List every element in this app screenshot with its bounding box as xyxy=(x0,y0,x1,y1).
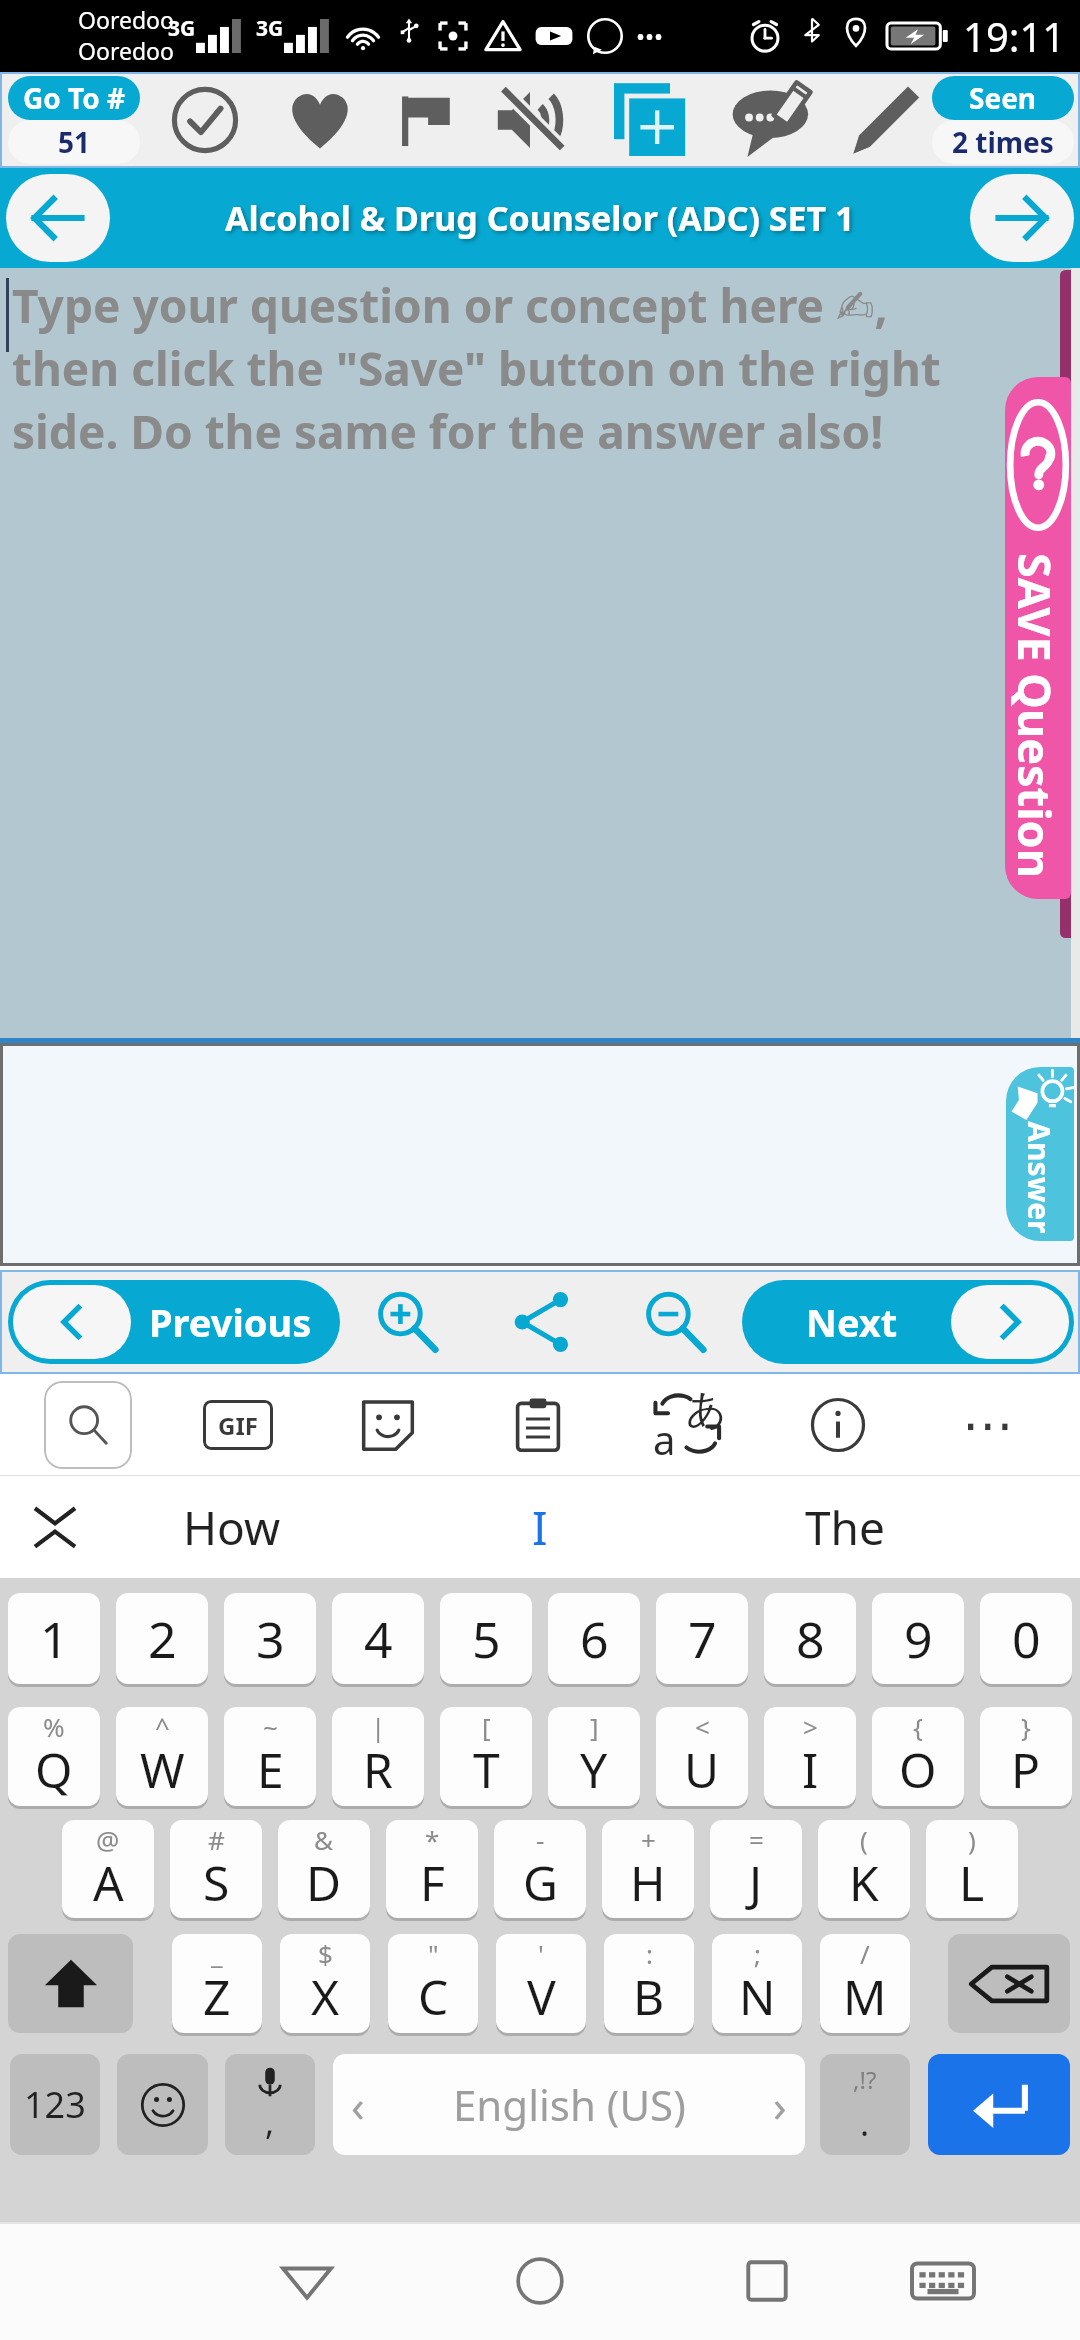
button[interactable]: @ xyxy=(62,1820,154,1918)
button[interactable]: Flag xyxy=(381,76,469,164)
button[interactable]: & xyxy=(278,1820,370,1918)
button[interactable]: Recents xyxy=(712,2226,822,2336)
button[interactable]: Home xyxy=(485,2226,595,2336)
button[interactable]: ‹ xyxy=(333,2054,805,2155)
button[interactable]: ~ xyxy=(224,1707,316,1806)
staticText: I xyxy=(532,1496,548,1559)
button[interactable]: = xyxy=(710,1820,802,1918)
button[interactable]: Expand suggestions xyxy=(26,1498,84,1556)
button[interactable]: Go To # xyxy=(8,76,140,164)
button[interactable]: Note xyxy=(728,76,816,164)
staticText: Ooredoo xyxy=(78,35,174,66)
button[interactable]: ( xyxy=(818,1820,910,1918)
staticText: 3 xyxy=(256,1605,285,1673)
button[interactable]: GIF xyxy=(194,1381,282,1469)
button[interactable]: The xyxy=(700,1476,990,1578)
button[interactable]: [ xyxy=(440,1707,532,1806)
button[interactable]: Back xyxy=(252,2226,362,2336)
staticText: Go To # xyxy=(23,79,126,117)
button[interactable]: 4 xyxy=(332,1593,424,1684)
button[interactable]: > xyxy=(764,1707,856,1806)
button[interactable]: Zoom out xyxy=(630,1277,720,1367)
button[interactable]: 7 xyxy=(656,1593,748,1684)
button[interactable]: 3 xyxy=(224,1593,316,1684)
staticText: X xyxy=(311,1964,340,2029)
button[interactable]: 8 xyxy=(764,1593,856,1684)
staticText: Z xyxy=(203,1964,231,2029)
button[interactable]: $ xyxy=(280,1934,370,2033)
staticText: U xyxy=(684,1737,720,1802)
button[interactable]: Hide keyboard xyxy=(888,2226,998,2336)
button[interactable]: 6 xyxy=(548,1593,640,1684)
button[interactable]: + xyxy=(602,1820,694,1918)
button[interactable]: Show answer xyxy=(1006,1067,1074,1241)
button[interactable]: _ xyxy=(172,1934,262,2033)
button[interactable]: Shift xyxy=(8,1934,133,2033)
button[interactable]: Mark known xyxy=(161,76,249,164)
button[interactable]: / xyxy=(820,1934,910,2033)
staticText: ; xyxy=(754,1936,761,1971)
button[interactable]: ] xyxy=(548,1707,640,1806)
button[interactable]: < xyxy=(656,1707,748,1806)
button[interactable]: - xyxy=(494,1820,586,1918)
button[interactable]: # xyxy=(170,1820,262,1918)
button[interactable]: Stickers xyxy=(344,1381,432,1469)
button[interactable]: Period xyxy=(820,2054,910,2155)
staticText: . xyxy=(860,2100,870,2146)
button[interactable]: ' xyxy=(496,1934,586,2033)
button[interactable]: 9 xyxy=(872,1593,964,1684)
button[interactable]: Mute xyxy=(486,76,574,164)
button[interactable]: Next set xyxy=(970,174,1074,262)
button[interactable]: I xyxy=(395,1476,685,1578)
button[interactable]: 2 xyxy=(116,1593,208,1684)
staticText: 123 xyxy=(24,2080,86,2129)
button[interactable]: Backspace xyxy=(948,1934,1070,2033)
button[interactable]: : xyxy=(604,1934,694,2033)
button[interactable]: 5 xyxy=(440,1593,532,1684)
staticText: J xyxy=(749,1850,763,1915)
staticText: ••• xyxy=(636,20,664,53)
staticText: { xyxy=(913,1709,923,1744)
staticText: Ooredoo xyxy=(78,4,174,35)
button[interactable]: Zoom in xyxy=(362,1277,452,1367)
button[interactable]: Translate xyxy=(644,1381,732,1469)
button[interactable]: Search xyxy=(44,1381,132,1469)
button[interactable]: Enter xyxy=(928,2054,1070,2155)
button[interactable]: Voice input xyxy=(225,2054,315,2155)
button[interactable]: Seen xyxy=(932,76,1074,164)
button[interactable]: Symbols xyxy=(10,2054,100,2155)
button[interactable]: More options xyxy=(944,1381,1032,1469)
staticText: 6 xyxy=(580,1605,609,1673)
staticText: # xyxy=(208,1822,225,1857)
button[interactable]: " xyxy=(388,1934,478,2033)
staticText: English (US) xyxy=(453,2076,686,2133)
button[interactable]: How xyxy=(87,1476,377,1578)
button[interactable]: ) xyxy=(926,1820,1018,1918)
staticText: 3G xyxy=(256,14,284,43)
button[interactable]: 0 xyxy=(980,1593,1072,1684)
button[interactable]: % xyxy=(8,1707,100,1806)
staticText: C xyxy=(418,1964,449,2029)
button[interactable]: 1 xyxy=(8,1593,100,1684)
button[interactable]: } xyxy=(980,1707,1072,1806)
button[interactable]: ^ xyxy=(116,1707,208,1806)
button[interactable]: Clipboard xyxy=(494,1381,582,1469)
button[interactable]: Save question xyxy=(1005,377,1071,899)
button[interactable]: Emoji xyxy=(117,2054,208,2155)
button[interactable]: { xyxy=(872,1707,964,1806)
button[interactable]: Edit xyxy=(843,76,931,164)
button[interactable]: | xyxy=(332,1707,424,1806)
staticText: あ xyxy=(686,1384,727,1434)
button[interactable]: Share xyxy=(497,1277,587,1367)
staticText: 2 times xyxy=(952,123,1054,161)
button[interactable]: ; xyxy=(712,1934,802,2033)
staticText: then click the "Save" button on the righ… xyxy=(12,337,941,400)
button[interactable]: Next xyxy=(742,1280,1074,1364)
button[interactable]: Previous xyxy=(8,1280,340,1364)
button[interactable]: Previous set xyxy=(6,174,110,262)
button[interactable]: Add card xyxy=(606,76,694,164)
button[interactable]: * xyxy=(386,1820,478,1918)
button[interactable]: Info xyxy=(794,1381,882,1469)
staticText: 1 xyxy=(40,1605,69,1673)
button[interactable]: Favorite xyxy=(276,76,364,164)
